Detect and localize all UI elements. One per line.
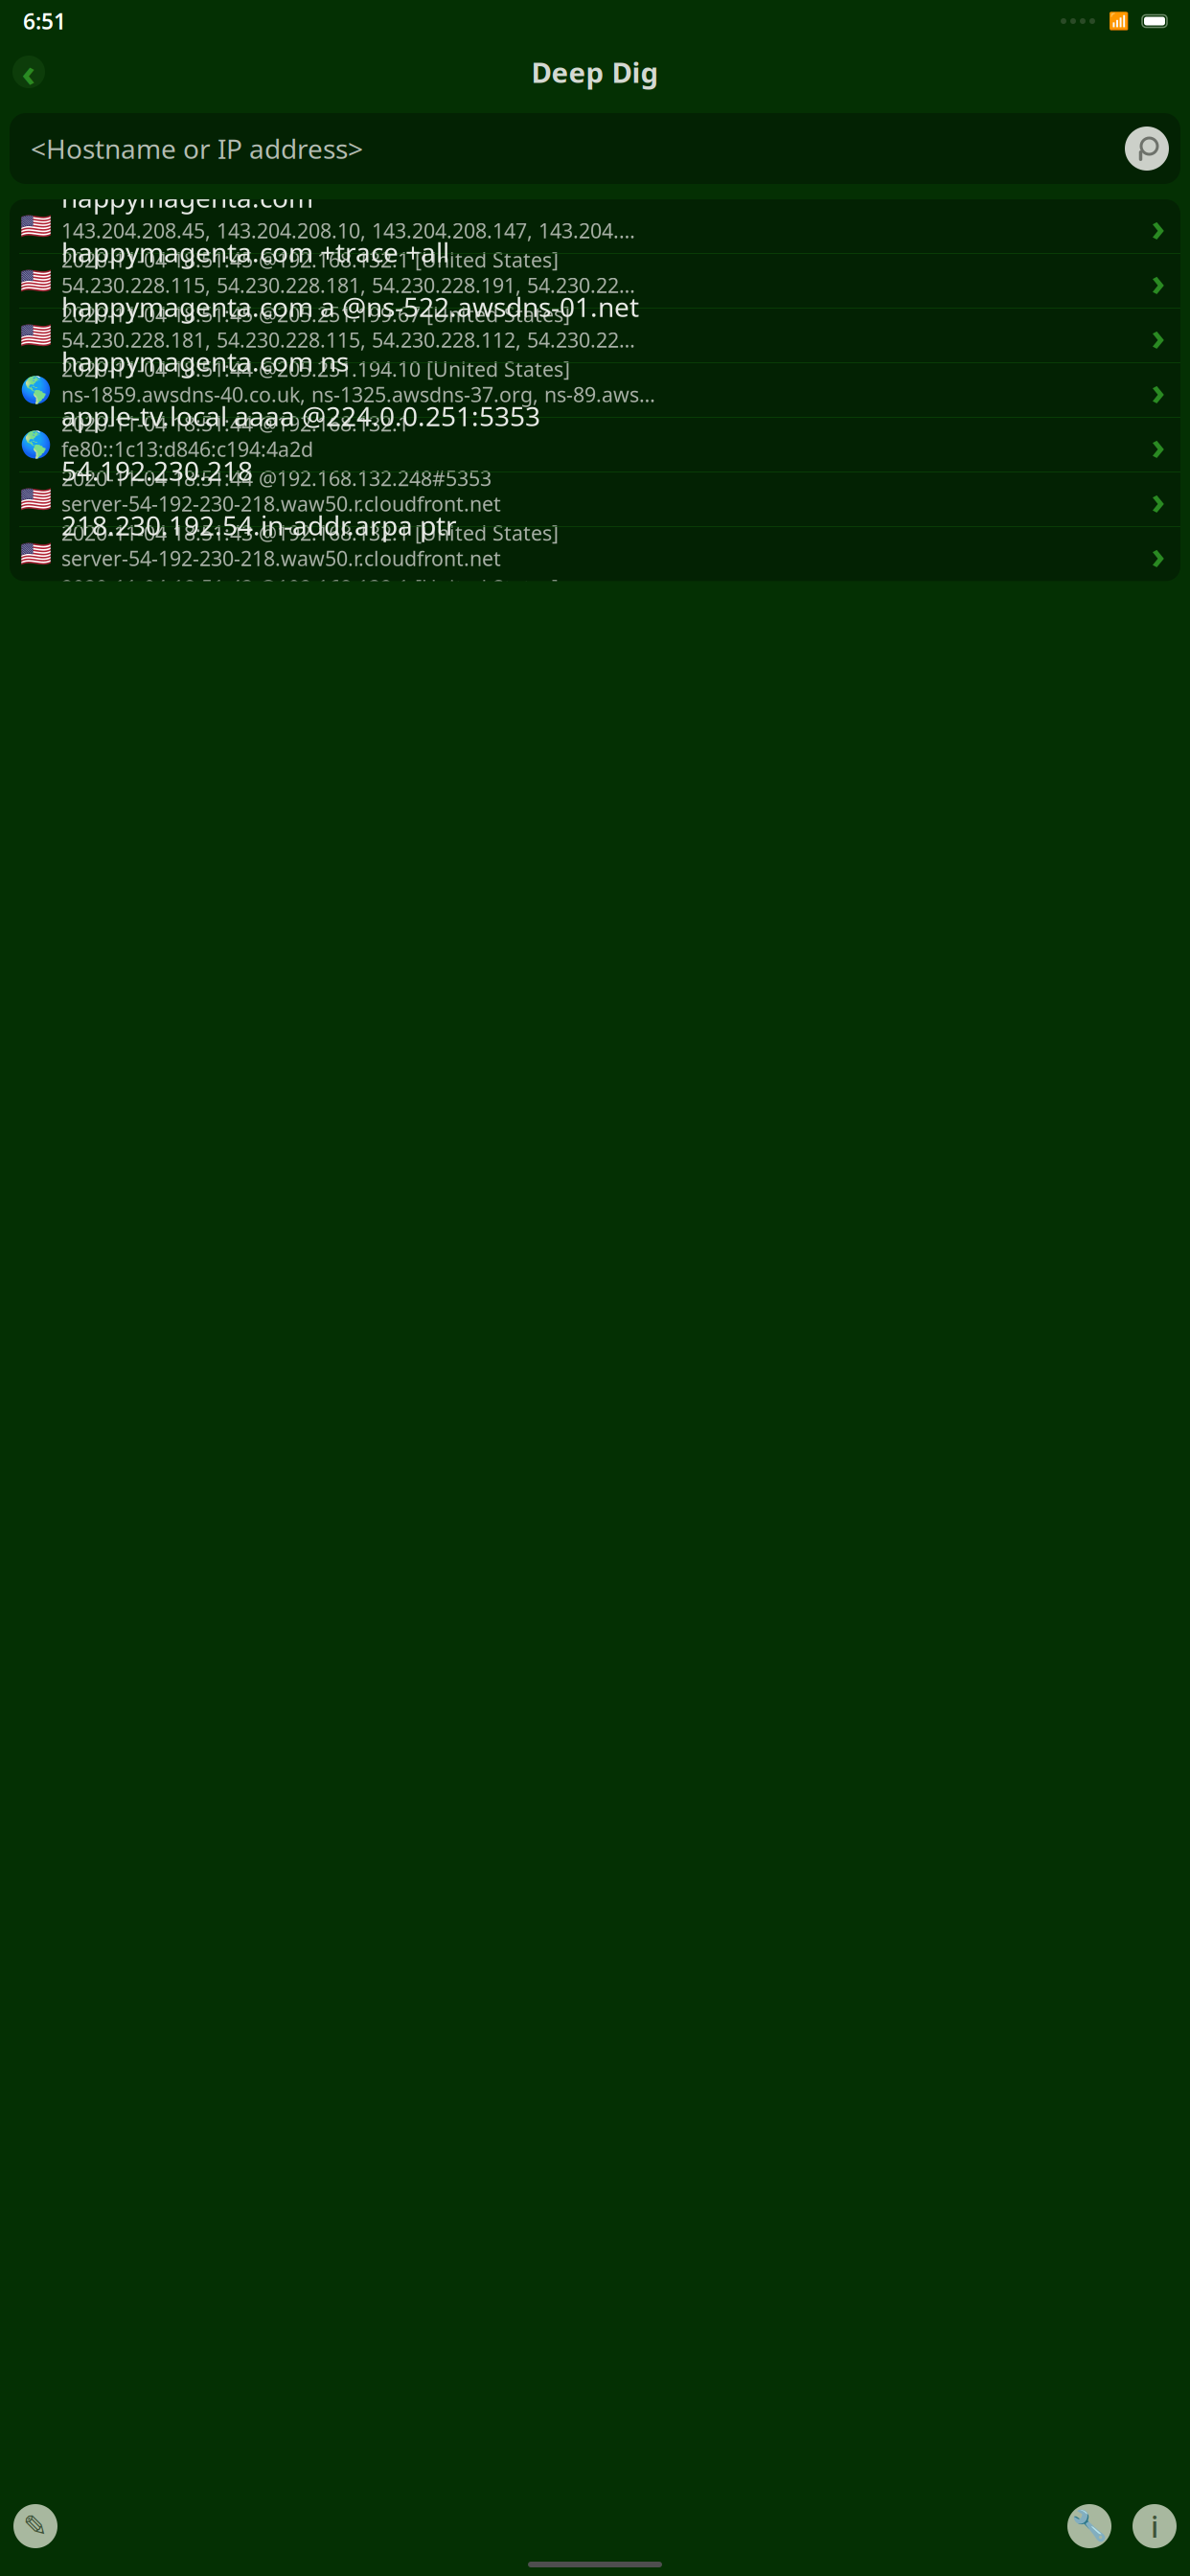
button[interactable]: Edit xyxy=(10,2500,61,2552)
staticText: › xyxy=(1151,419,1166,470)
staticText: 218.230.192.54.in-addr.arpa ptr xyxy=(61,507,457,543)
staticText: 54.192.230.218 xyxy=(61,453,253,488)
staticText: i xyxy=(1151,2507,1158,2546)
button[interactable]: Info xyxy=(1129,2500,1180,2552)
button[interactable]: 🌎 xyxy=(10,363,1180,417)
button[interactable]: 🇺🇸 xyxy=(10,253,1180,308)
button[interactable]: 🇺🇸 xyxy=(10,472,1180,526)
staticText: 2020-11-04 18:51:43 @192.168.132.1 [Unit… xyxy=(61,519,559,546)
staticText: › xyxy=(1151,474,1166,525)
staticText: 🌎 xyxy=(20,376,51,405)
staticText: 🇺🇸 xyxy=(20,212,51,241)
staticText: happymagenta.com xyxy=(61,179,313,215)
staticText: 143.204.208.45, 143.204.208.10, 143.204.… xyxy=(61,217,635,244)
staticText: Deep Dig xyxy=(531,53,659,91)
staticText: 🇺🇸 xyxy=(20,485,51,514)
button[interactable]: 🇺🇸 xyxy=(10,308,1180,363)
staticText: server-54-192-230-218.waw50.r.cloudfront… xyxy=(61,545,501,572)
staticText: server-54-192-230-218.waw50.r.cloudfront… xyxy=(61,490,501,517)
staticText: 🔧 xyxy=(1071,2509,1108,2543)
staticText: ‹ xyxy=(22,46,36,97)
staticText: › xyxy=(1151,255,1166,306)
staticText: 📶 xyxy=(1109,12,1130,31)
staticText: 2020-11-04 18:51:45 @192.168.132.1 [Unit… xyxy=(61,246,559,273)
staticText: 2020-11-04 18:51:44 @192.168.132.1 xyxy=(61,410,409,437)
staticText: ns-1859.awsdns-40.co.uk, ns-1325.awsdns-… xyxy=(61,381,655,408)
button[interactable]: Back xyxy=(8,51,50,93)
staticText: › xyxy=(1151,365,1166,416)
button[interactable]: 🇺🇸 xyxy=(10,199,1180,253)
staticText: 2020-11-04 18:51:43 @192.168.132.1 [Unit… xyxy=(61,574,559,601)
staticText: happymagenta.com a @ns-522.awsdns-01.net xyxy=(61,289,639,324)
staticText: 6:51 xyxy=(23,7,66,35)
staticText: 2020-11-04 18:51:44 @205.251.194.10 [Uni… xyxy=(61,355,570,382)
staticText: 2020-11-04 18:51:45 @205.251.199.67 [Uni… xyxy=(61,301,570,328)
staticText: happymagenta.com ns xyxy=(61,343,349,379)
staticText: <Hostname or IP address> xyxy=(31,131,363,166)
staticText: › xyxy=(1151,529,1166,580)
staticText: happymagenta.com +trace +all xyxy=(61,234,449,270)
staticText: 🌎 xyxy=(20,430,51,459)
staticText: ✎ xyxy=(23,2509,48,2543)
button[interactable]: Search xyxy=(1122,124,1172,173)
staticText: 54.230.228.115, 54.230.228.181, 54.230.2… xyxy=(61,272,635,299)
staticText: 🇺🇸 xyxy=(20,539,51,569)
button[interactable]: 🇺🇸 xyxy=(10,526,1180,581)
staticText: 🇺🇸 xyxy=(20,266,51,296)
staticText: fe80::1c13:d846:c194:4a2d xyxy=(61,435,313,463)
staticText: apple-tv.local aaaa @224.0.0.251:5353 xyxy=(61,398,540,434)
staticText: 2020-11-04 18:51:44 @192.168.132.248#535… xyxy=(61,465,492,492)
staticText: 54.230.228.181, 54.230.228.115, 54.230.2… xyxy=(61,326,635,353)
staticText: › xyxy=(1151,310,1166,361)
staticText: 🇺🇸 xyxy=(20,321,51,350)
button[interactable]: Tools xyxy=(1064,2500,1115,2552)
staticText: › xyxy=(1151,201,1166,252)
button[interactable]: 🌎 xyxy=(10,417,1180,472)
